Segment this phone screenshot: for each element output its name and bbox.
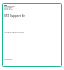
staticText: City ST bbox=[4, 6, 12, 9]
staticText: Lorem ipsum dol bbox=[4, 30, 24, 33]
staticText: ACME Co bbox=[4, 4, 15, 7]
staticText: XYZ Support Se bbox=[4, 14, 26, 18]
staticText: 555-010 bbox=[4, 7, 13, 10]
staticText: Thanks bbox=[4, 57, 13, 60]
staticText: 12 Main bbox=[4, 5, 13, 8]
